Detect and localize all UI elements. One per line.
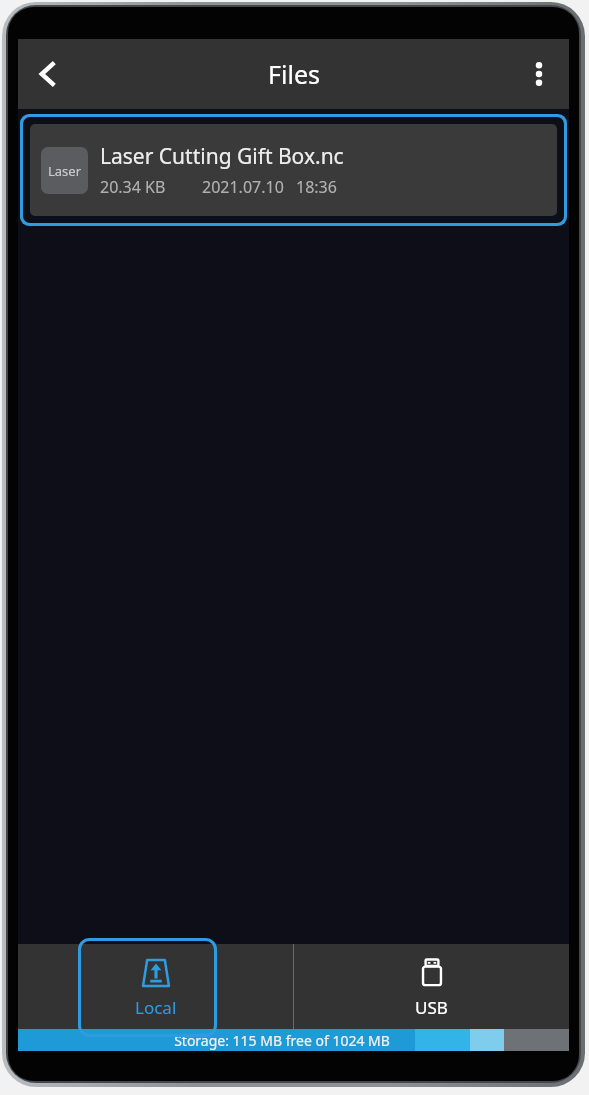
staticText: Local (135, 996, 177, 1019)
staticText: Storage: 115 MB free of 1024 MB (174, 1031, 390, 1050)
staticText: Laser Cutting Gift Box.nc (100, 142, 344, 171)
staticText: USB (415, 996, 448, 1019)
button[interactable]: Back (18, 44, 78, 104)
staticText: 20.34 KB (100, 176, 166, 198)
button[interactable]: Local (18, 944, 293, 1029)
staticText: Laser (48, 162, 82, 180)
staticText: 18:36 (296, 176, 337, 198)
button[interactable]: Laser (30, 124, 557, 216)
button[interactable]: USB (294, 944, 569, 1029)
staticText: 2021.07.10 (202, 176, 284, 198)
button[interactable]: More options (509, 44, 569, 104)
staticText: Files (268, 57, 320, 91)
